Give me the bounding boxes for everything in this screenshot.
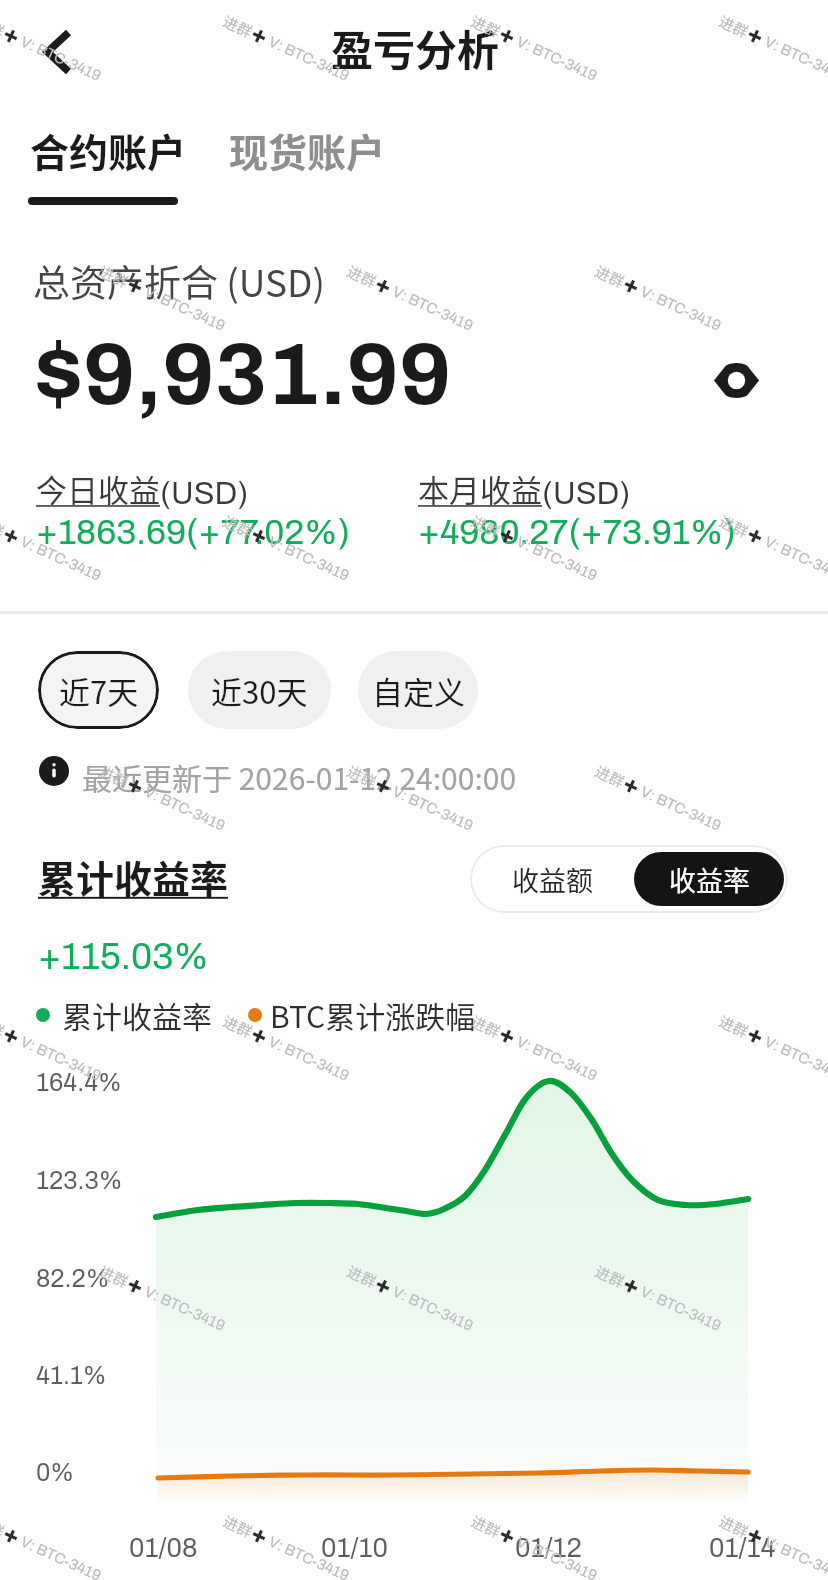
staticText: 进群 [0,10,9,43]
staticText: 总资产折合 (USD) [33,254,326,308]
staticText: ✚ [248,1023,271,1049]
staticText: ✚ [0,523,23,549]
staticText: 近30天 [211,668,308,713]
button[interactable]: 近30天 [188,651,331,729]
staticText: 进群 [95,1260,133,1293]
staticText: 进群 [467,1510,505,1543]
staticText: 进群 [219,10,257,43]
staticText: ✚ [124,773,147,799]
button[interactable]: 收益率 [634,852,784,906]
staticText: ✚ [0,23,23,49]
staticText: 进群 [715,1510,753,1543]
staticText: V: BTC-3419 [263,1532,352,1580]
staticText: V: BTC-3419 [759,532,828,584]
staticText: V: BTC-3419 [511,1532,600,1580]
staticText: 进群 [591,1260,629,1293]
staticText: V: BTC-3419 [635,282,724,334]
staticText: 最近更新于 2026-01-12 24:00:00 [82,755,517,798]
staticText: ✚ [124,1273,147,1299]
staticText: V: BTC-3419 [15,32,104,84]
staticText: V: BTC-3419 [139,1282,228,1334]
staticText: ✚ [124,273,147,299]
staticText: ✚ [0,1023,23,1049]
staticText: $9,931.99 [34,327,452,423]
staticText: V: BTC-3419 [387,282,476,334]
staticText: 进群 [0,1510,9,1543]
staticText: ✚ [744,23,767,49]
staticText: V: BTC-3419 [263,32,352,84]
button[interactable]: 现货账户 [217,110,391,210]
staticText: V: BTC-3419 [15,1532,104,1580]
staticText: 近7天 [59,668,139,713]
staticText: 164.4% [36,1069,122,1096]
staticText: 01/12 [515,1533,582,1562]
staticText: ✚ [496,1023,519,1049]
staticText: ✚ [496,523,519,549]
staticText: ✚ [620,273,643,299]
staticText: ✚ [620,773,643,799]
staticText: (USD) [542,477,631,511]
staticText: +115.03% [38,937,209,977]
staticText: 进群 [591,760,629,793]
staticText: 进群 [467,510,505,543]
staticText: 合约账户 [30,122,187,178]
staticText: BTC累计涨跌幅 [270,993,476,1036]
staticText: 进群 [0,510,9,543]
staticText: V: BTC-3419 [759,1532,828,1580]
staticText: ✚ [372,273,395,299]
staticText: ✚ [372,1273,395,1299]
staticText: ✚ [0,1523,23,1549]
staticText: 进群 [343,760,381,793]
staticText: 82.2% [36,1265,110,1292]
staticText: 进群 [219,1010,257,1043]
staticText: 进群 [219,1510,257,1543]
button[interactable]: Hide balance [705,349,767,411]
staticText: 进群 [0,1010,9,1043]
staticText: 今日收益 [36,466,160,511]
staticText: 进群 [467,10,505,43]
staticText: 41.1% [36,1362,107,1389]
staticText: 进群 [219,510,257,543]
staticText: +4980.27(+73.91%) [418,513,736,551]
staticText: 进群 [95,260,133,293]
staticText: V: BTC-3419 [263,1032,352,1084]
staticText: 进群 [715,510,753,543]
staticText: +1863.69(+77.02%) [36,513,350,551]
staticText: ✚ [372,773,395,799]
staticText: ✚ [248,523,271,549]
staticText: 盈亏分析 [331,17,500,78]
staticText: (USD) [160,477,249,511]
staticText: V: BTC-3419 [511,532,600,584]
staticText: 进群 [95,760,133,793]
button[interactable]: 自定义 [358,651,478,729]
staticText: 进群 [467,1010,505,1043]
staticText: 进群 [343,1260,381,1293]
staticText: ✚ [248,1523,271,1549]
staticText: 进群 [591,260,629,293]
staticText: V: BTC-3419 [511,1032,600,1084]
staticText: V: BTC-3419 [635,782,724,834]
staticText: 01/10 [321,1533,389,1562]
staticText: ✚ [248,23,271,49]
staticText: V: BTC-3419 [15,532,104,584]
button[interactable]: Back [18,12,98,92]
button[interactable]: 合约账户 [18,110,192,210]
staticText: 01/14 [709,1533,776,1562]
staticText: 进群 [715,10,753,43]
button[interactable]: 收益额 [470,845,634,913]
staticText: 0% [36,1459,75,1486]
staticText: 累计收益率 [38,849,229,904]
staticText: 本月收益 [418,466,542,511]
staticText: 进群 [343,260,381,293]
staticText: ✚ [744,1523,767,1549]
staticText: ✚ [744,1023,767,1049]
staticText: V: BTC-3419 [387,782,476,834]
staticText: V: BTC-3419 [511,32,600,84]
staticText: ✚ [496,23,519,49]
button[interactable]: 近7天 [38,651,159,729]
staticText: ✚ [620,1273,643,1299]
staticText: 进群 [715,1010,753,1043]
staticText: 累计收益率 [62,993,212,1036]
staticText: 收益率 [669,860,750,899]
staticText: V: BTC-3419 [635,1282,724,1334]
